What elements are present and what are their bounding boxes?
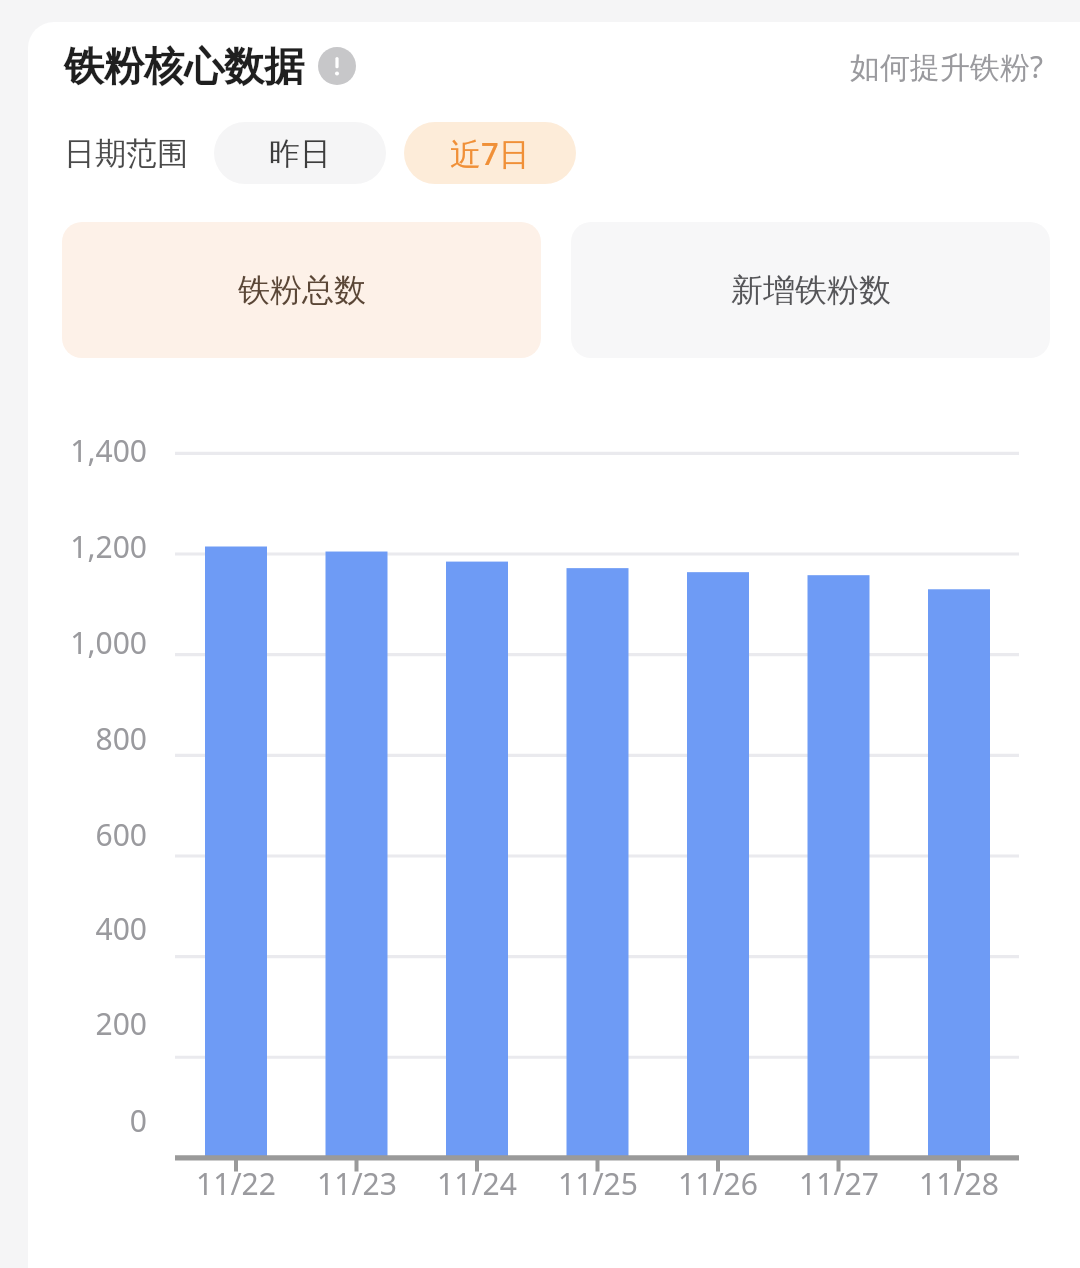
staticText: 1,000 xyxy=(28,622,147,663)
staticText: 200 xyxy=(28,1003,147,1044)
button[interactable]: 铁粉总数 xyxy=(62,222,541,358)
staticText: 11/23 xyxy=(297,1163,417,1204)
button[interactable]: 昨日 xyxy=(214,122,386,184)
staticText: 新增铁粉数 xyxy=(731,270,891,310)
staticText: 400 xyxy=(28,908,147,949)
staticText: 近7日 xyxy=(450,132,530,174)
staticText: 1,400 xyxy=(28,430,147,471)
button[interactable]: 近7日 xyxy=(404,122,576,184)
staticText: 11/27 xyxy=(779,1163,899,1204)
staticText: 0 xyxy=(28,1100,147,1141)
staticText: 如何提升铁粉? xyxy=(850,46,1044,87)
staticText: 11/25 xyxy=(538,1163,658,1204)
button[interactable]: 说明 xyxy=(318,47,356,85)
staticText: 600 xyxy=(28,814,147,855)
button[interactable]: 新增铁粉数 xyxy=(571,222,1050,358)
staticText: 11/26 xyxy=(658,1163,778,1204)
staticText: 11/28 xyxy=(899,1163,1019,1204)
staticText: 800 xyxy=(28,718,147,759)
staticText: 昨日 xyxy=(269,134,331,173)
staticText: 铁粉核心数据 xyxy=(64,41,304,91)
staticText: 11/22 xyxy=(176,1163,296,1204)
staticText: 日期范围 xyxy=(64,134,188,173)
button[interactable]: 铁粉核心数据 xyxy=(64,41,356,91)
staticText: 铁粉总数 xyxy=(238,270,366,310)
button[interactable]: 如何提升铁粉? xyxy=(850,46,1044,87)
staticText: 11/24 xyxy=(417,1163,537,1204)
staticText: 1,200 xyxy=(28,526,147,567)
